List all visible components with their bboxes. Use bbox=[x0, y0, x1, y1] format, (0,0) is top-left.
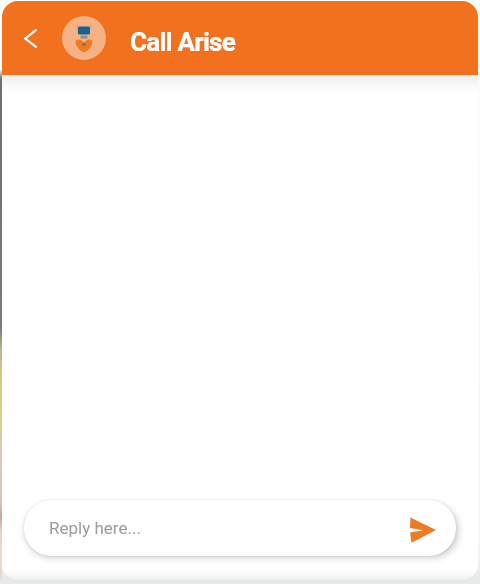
button[interactable]: Reply here... bbox=[24, 500, 456, 556]
button[interactable]: Back bbox=[13, 21, 47, 55]
staticText: Reply here... bbox=[49, 518, 141, 538]
button[interactable]: Send bbox=[399, 505, 445, 551]
staticText: Call Arise bbox=[130, 27, 236, 57]
button[interactable]: Contact avatar bbox=[62, 16, 106, 60]
